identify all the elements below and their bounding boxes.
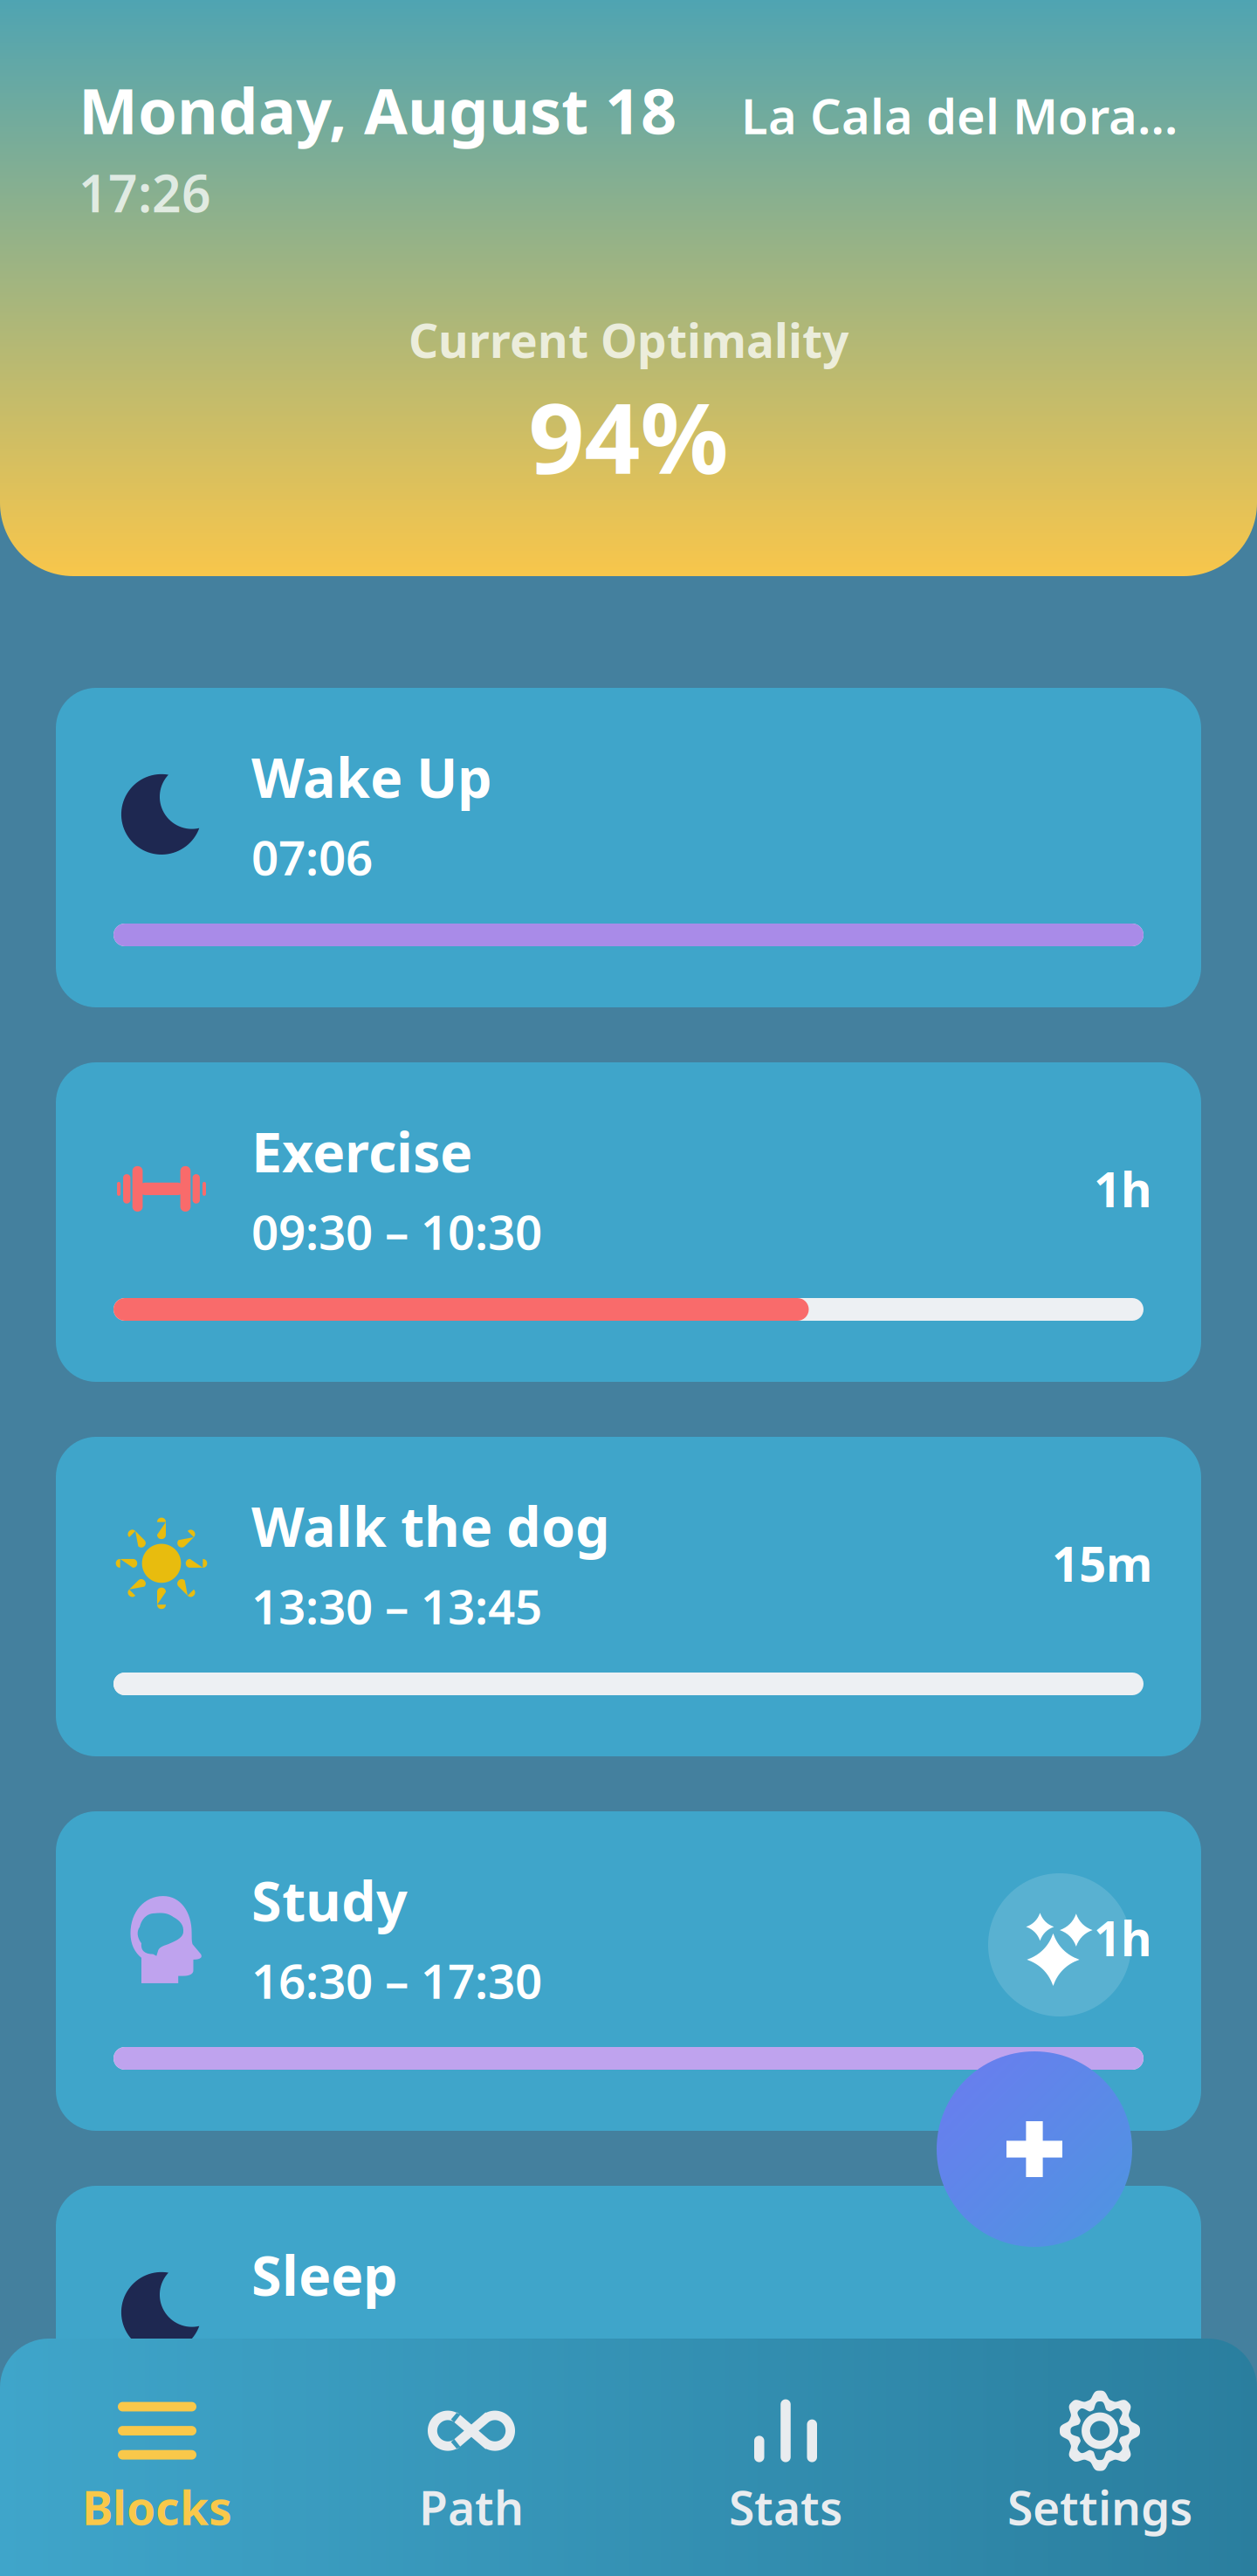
staticText: 13:30 – 13:45 — [251, 1574, 542, 1637]
button[interactable]: Path — [314, 2399, 628, 2538]
staticText: Exercise — [251, 1115, 472, 1187]
staticText: 23:00 — [251, 2323, 373, 2386]
button[interactable]: Wake Up — [56, 688, 1201, 1007]
staticText: Settings — [1007, 2476, 1192, 2538]
staticText: 1h — [1094, 1906, 1152, 1969]
staticText: Study — [251, 1864, 408, 1936]
staticText: 07:06 — [251, 825, 373, 888]
staticText: Sleep — [251, 2238, 398, 2311]
button[interactable]: Exercise — [56, 1062, 1201, 1382]
staticText: 1h — [1094, 1157, 1152, 1221]
staticText: Wake Up — [251, 740, 492, 813]
staticText: 09:30 – 10:30 — [251, 1200, 542, 1263]
button[interactable]: Sleep — [56, 2186, 1201, 2505]
staticText: 94% — [529, 371, 728, 501]
staticText: La Cala del Mora… — [741, 83, 1178, 148]
staticText: 15m — [1052, 1532, 1152, 1595]
staticText: 17:26 — [79, 159, 211, 227]
button[interactable]: Optimize schedule — [988, 1873, 1131, 2016]
staticText: Current Optimality — [409, 309, 848, 371]
staticText: Walk the dog — [251, 1489, 610, 1562]
staticText: Path — [419, 2476, 524, 2538]
staticText: Stats — [729, 2476, 842, 2538]
button[interactable]: Settings — [943, 2399, 1257, 2538]
button[interactable]: Study — [56, 1811, 1201, 2131]
staticText: Blocks — [82, 2476, 232, 2538]
button[interactable]: Stats — [628, 2399, 943, 2538]
button[interactable]: Walk the dog — [56, 1437, 1201, 1756]
staticText: 16:30 – 17:30 — [251, 1949, 542, 2012]
staticText: Monday, August 18 — [79, 68, 677, 152]
button[interactable]: Add block — [937, 2051, 1132, 2247]
button[interactable]: Blocks — [0, 2399, 314, 2538]
